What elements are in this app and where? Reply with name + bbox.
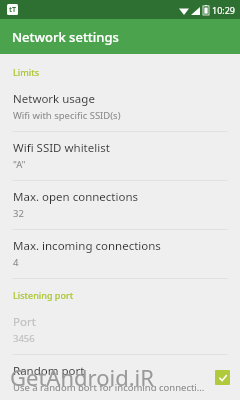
staticText: Wifi SSID whitelist [13,140,110,156]
staticText: Use a random port for incoming connectio… [13,381,209,391]
staticText: Max. incoming connections [13,238,161,254]
staticText: Limits [13,66,40,78]
staticText: 3456 [13,332,35,345]
staticText: Wifi with specific SSID(s) [13,109,121,122]
staticText: 10:29 [212,4,236,16]
button[interactable]: Random port [0,355,240,400]
button[interactable]: Max. open connections [0,181,240,229]
staticText: 32 [13,207,24,220]
staticText: Network usage [13,91,95,107]
staticText: Random port [13,363,85,379]
staticText: Port [13,314,36,330]
staticText: GetAndroid.iR [10,362,154,392]
staticText: Network settings [12,28,119,46]
button[interactable]: Port [0,306,240,354]
staticText: Listening port [13,289,74,301]
staticText: "A" [13,158,26,171]
staticText: Max. open connections [13,189,139,205]
staticText: tT [9,5,17,15]
button[interactable]: Max. incoming connections [0,230,240,278]
button[interactable]: Wifi SSID whitelist [0,132,240,180]
button[interactable]: Network usage [0,83,240,131]
other: Random port toggle [215,370,230,385]
staticText: 4 [13,256,19,269]
